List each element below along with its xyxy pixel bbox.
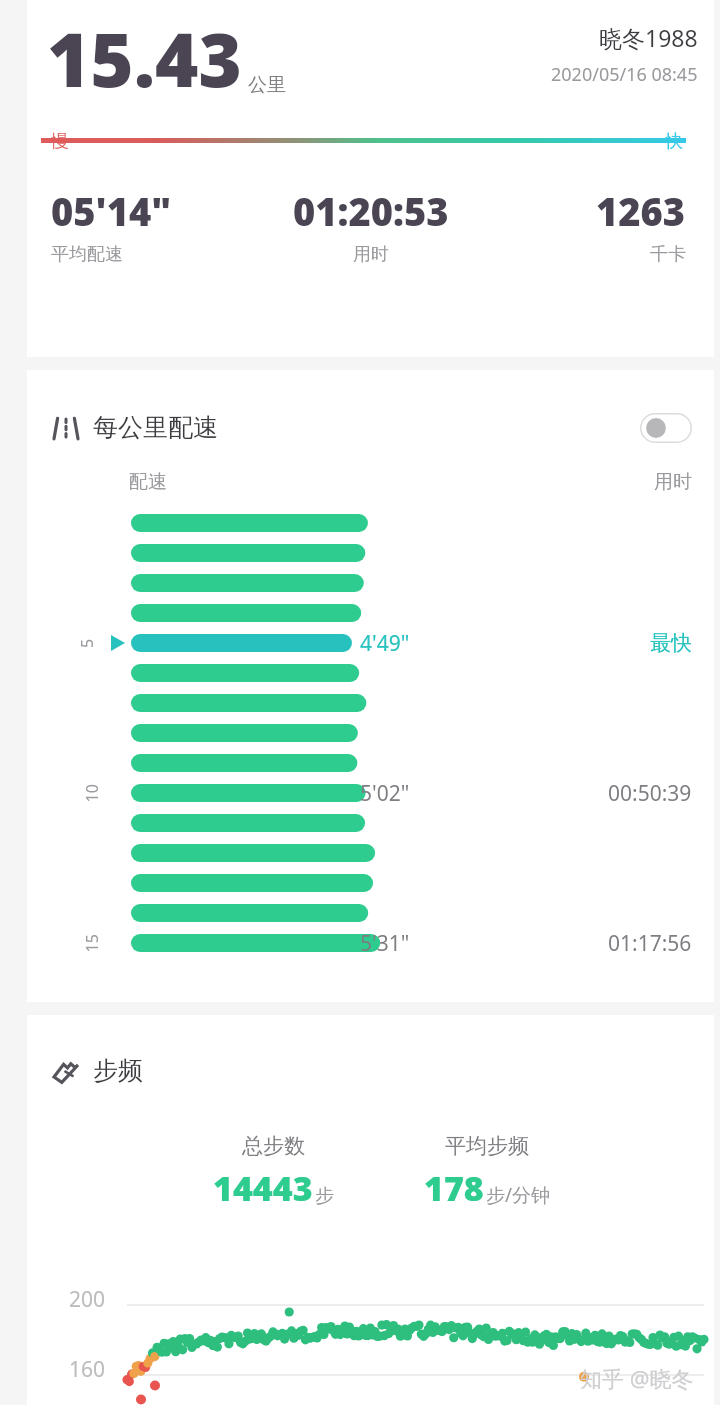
staticText: 用时 bbox=[654, 470, 692, 494]
staticText: 5'31" bbox=[360, 929, 410, 958]
staticText: 15 bbox=[80, 933, 102, 952]
staticText: 快 bbox=[665, 130, 683, 153]
staticText: 1263 bbox=[596, 185, 686, 237]
staticText: 14443 bbox=[213, 1165, 313, 1211]
staticText: 5'02" bbox=[360, 779, 410, 808]
staticText: 00:50:39 bbox=[608, 779, 692, 808]
staticText: 4'49" bbox=[360, 629, 410, 658]
staticText: 知乎 @晓冬 bbox=[580, 1363, 694, 1393]
staticText: 平均步频 bbox=[445, 1133, 529, 1159]
staticText: 05'14" bbox=[51, 185, 172, 237]
staticText: 15.43 bbox=[47, 8, 242, 109]
staticText: 千卡 bbox=[650, 243, 686, 266]
button[interactable]: Toggle per-kilometre pace bbox=[640, 413, 692, 443]
staticText: 01:17:56 bbox=[608, 929, 692, 958]
staticText: 用时 bbox=[353, 243, 389, 266]
staticText: 160 bbox=[69, 1355, 106, 1384]
staticText: 步频 bbox=[93, 1055, 143, 1086]
staticText: 5 bbox=[76, 638, 98, 648]
staticText: 2020/05/16 08:45 bbox=[551, 62, 698, 87]
staticText: 10 bbox=[80, 783, 102, 802]
staticText: 200 bbox=[69, 1285, 106, 1314]
staticText: 最快 bbox=[650, 630, 692, 656]
staticText: 步 bbox=[315, 1184, 334, 1208]
staticText: 步/分钟 bbox=[486, 1182, 551, 1208]
staticText: 慢 bbox=[51, 130, 69, 153]
staticText: 公里 bbox=[248, 73, 286, 97]
staticText: 01:20:53 bbox=[293, 185, 449, 237]
staticText: 晓冬1988 bbox=[599, 22, 698, 53]
staticText: 配速 bbox=[129, 470, 167, 494]
staticText: 平均配速 bbox=[51, 243, 123, 266]
staticText: 总步数 bbox=[242, 1133, 305, 1159]
staticText: 178 bbox=[424, 1165, 484, 1211]
staticText: 每公里配速 bbox=[93, 412, 218, 443]
